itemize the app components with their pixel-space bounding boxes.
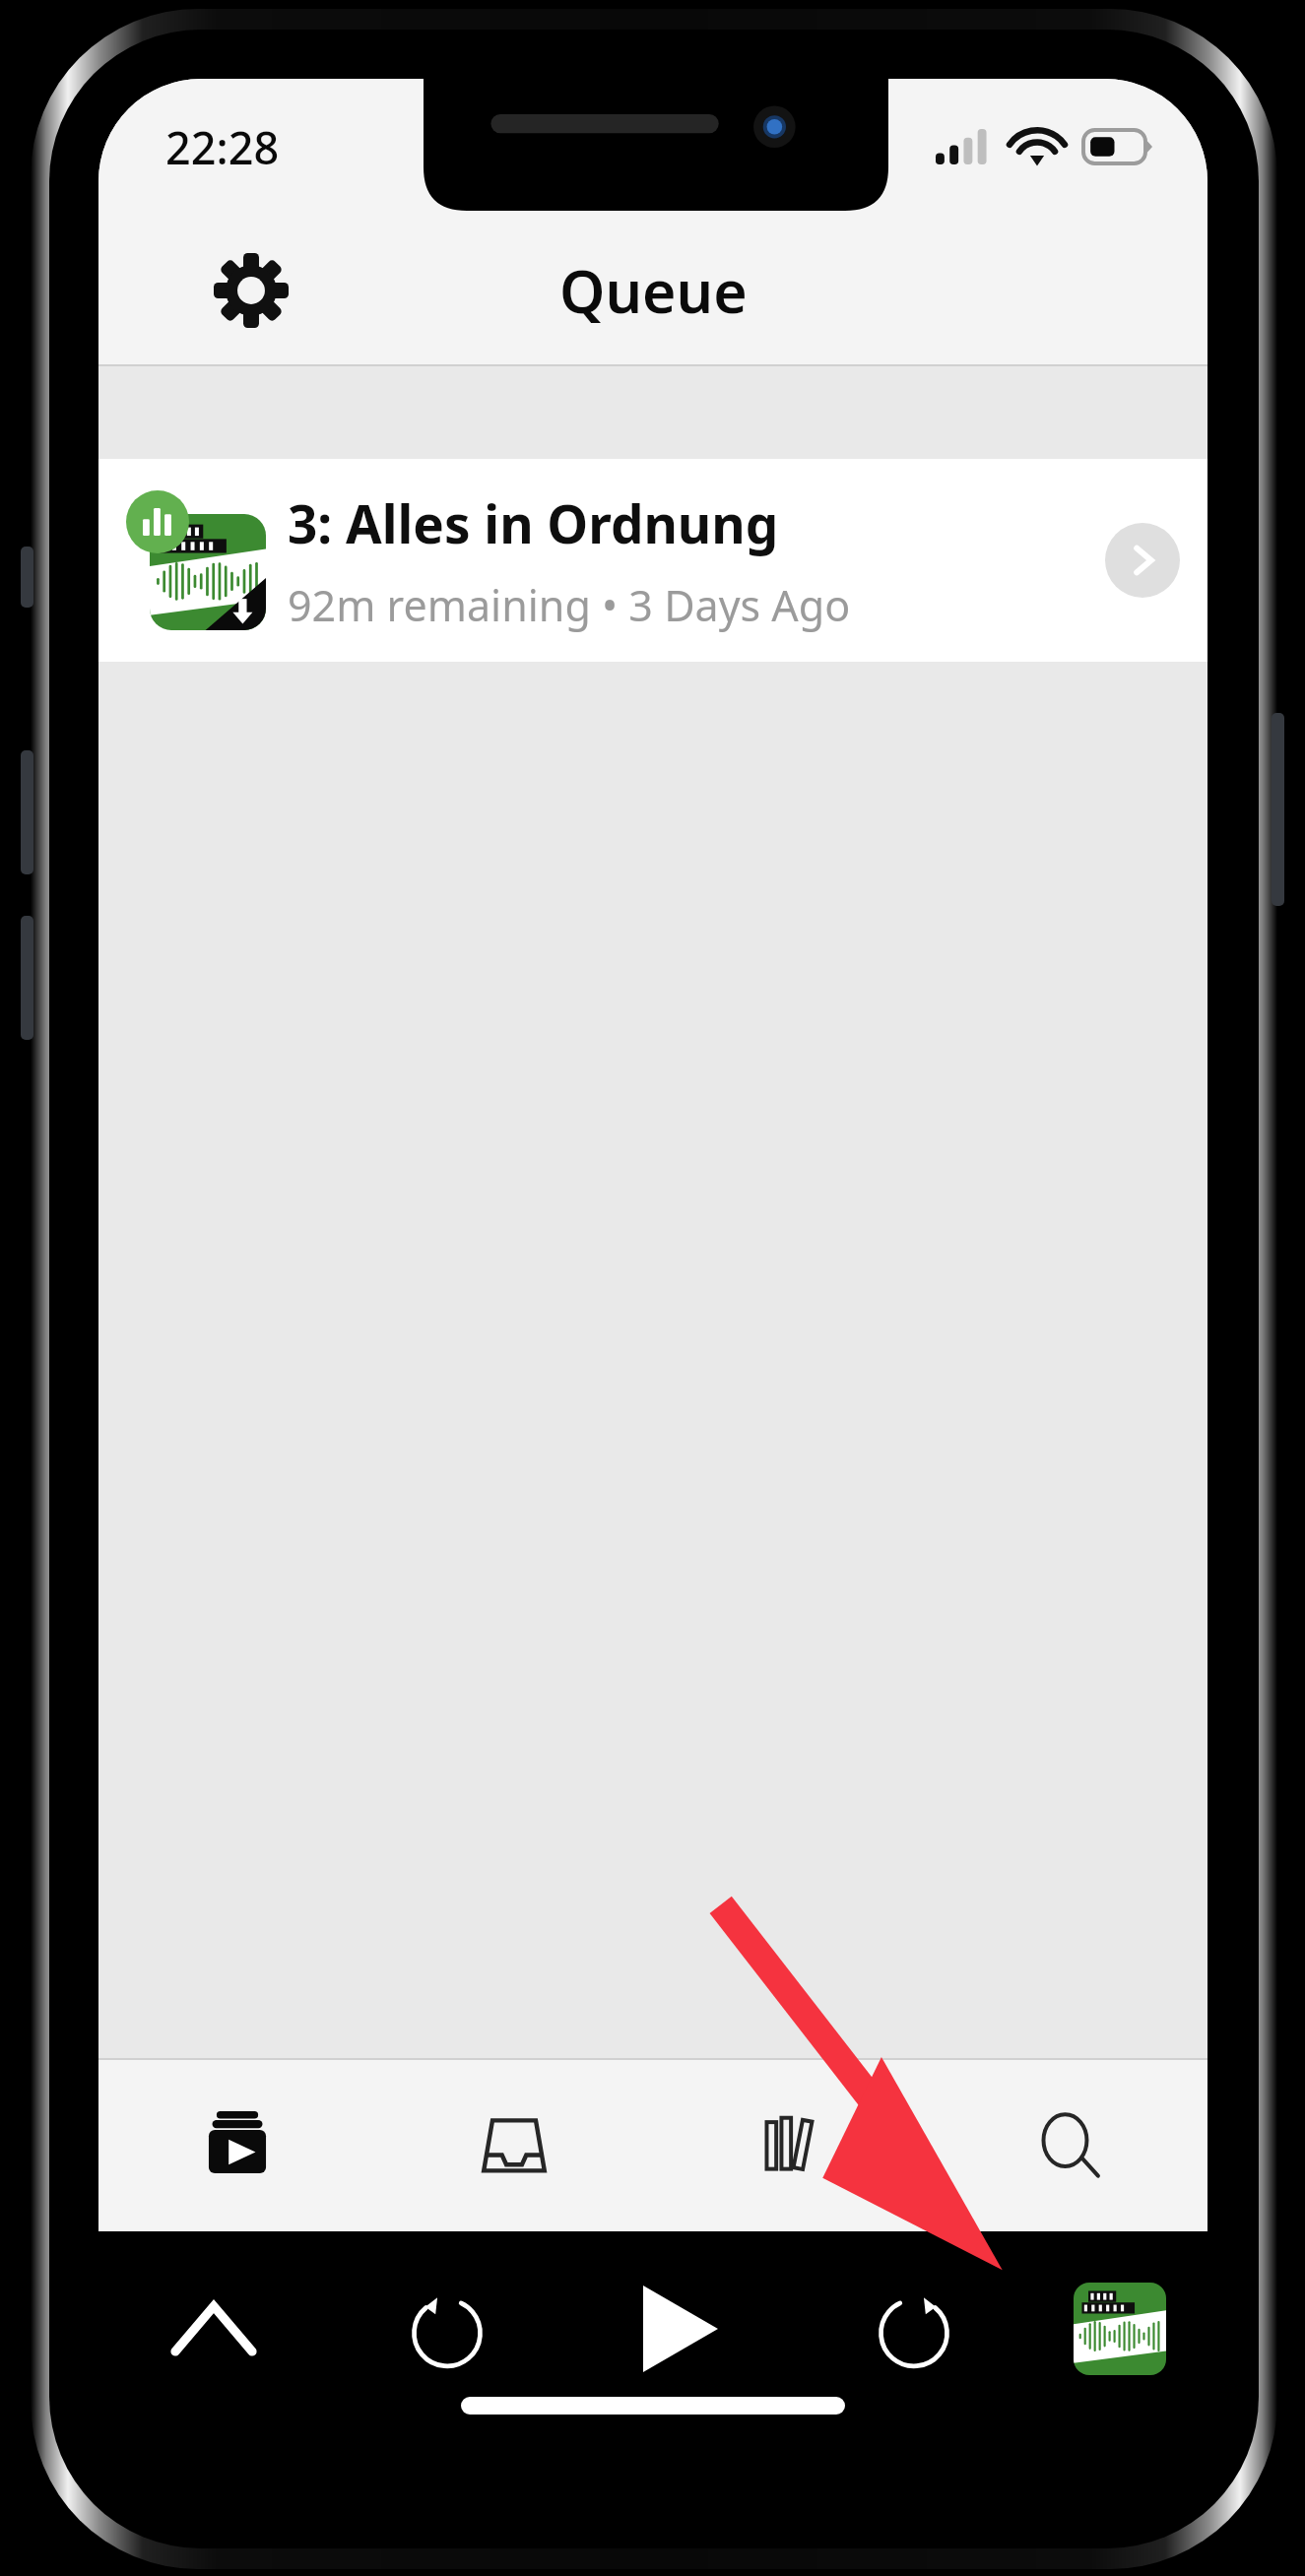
staticText: 92m remaining • 3 Days Ago bbox=[288, 576, 851, 634]
button[interactable]: Now playing artwork bbox=[1074, 2283, 1166, 2375]
staticText: 3: Alles in Ordnung bbox=[288, 487, 779, 558]
button[interactable]: Library bbox=[699, 2071, 884, 2219]
staticText: 22:28 bbox=[165, 117, 280, 177]
button[interactable]: Settings bbox=[205, 244, 297, 337]
staticText: Queue bbox=[559, 251, 748, 330]
button[interactable]: Play bbox=[607, 2255, 754, 2403]
button[interactable]: Open episode bbox=[1105, 523, 1180, 598]
button[interactable]: Inbox bbox=[422, 2071, 607, 2219]
button[interactable]: Skip back 15 seconds bbox=[373, 2255, 521, 2403]
button[interactable]: Expand player bbox=[140, 2255, 288, 2403]
button[interactable]: Skip forward 30 seconds bbox=[840, 2255, 988, 2403]
button[interactable]: 3: Alles in Ordnung bbox=[98, 459, 1207, 662]
button[interactable]: Podcasts bbox=[145, 2071, 330, 2219]
button[interactable]: Search bbox=[976, 2071, 1161, 2219]
